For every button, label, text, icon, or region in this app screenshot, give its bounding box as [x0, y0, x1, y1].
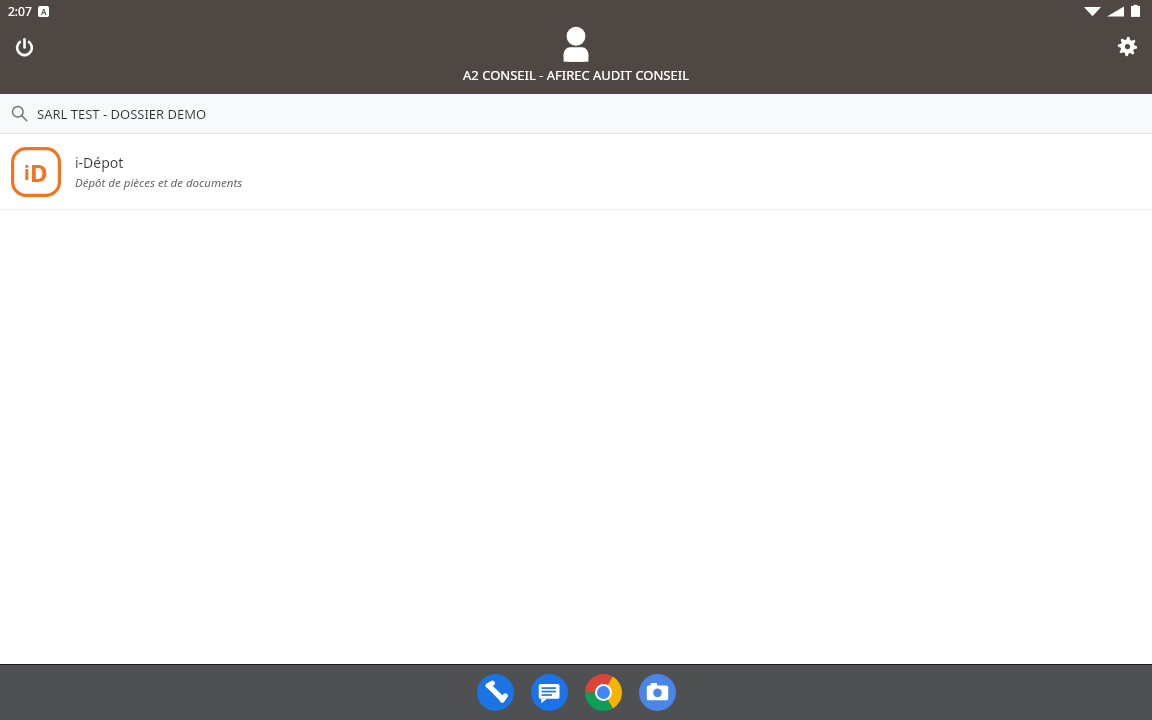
button[interactable]: Power / Log out — [4, 26, 44, 66]
staticText: SARL TEST - DOSSIER DEMO — [37, 105, 207, 123]
button[interactable]: Chrome — [585, 674, 622, 711]
staticText: i-Dépot — [75, 153, 124, 172]
button[interactable]: Messages — [531, 674, 568, 711]
button[interactable]: SARL TEST - DOSSIER DEMO — [0, 94, 1152, 133]
button[interactable]: Camera — [639, 674, 676, 711]
button[interactable]: A2 CONSEIL - AFIREC AUDIT CONSEIL — [0, 26, 1152, 84]
button[interactable]: Settings — [1107, 26, 1147, 66]
staticText: A2 CONSEIL - AFIREC AUDIT CONSEIL — [463, 66, 689, 84]
button[interactable]: i — [0, 134, 1152, 209]
staticText: 2:07 — [8, 3, 32, 19]
button[interactable]: Phone — [477, 674, 514, 711]
staticText: i — [24, 160, 30, 186]
staticText: Dépôt de pièces et de documents — [75, 175, 243, 191]
staticText: D — [30, 156, 48, 189]
staticText: A — [41, 6, 47, 17]
